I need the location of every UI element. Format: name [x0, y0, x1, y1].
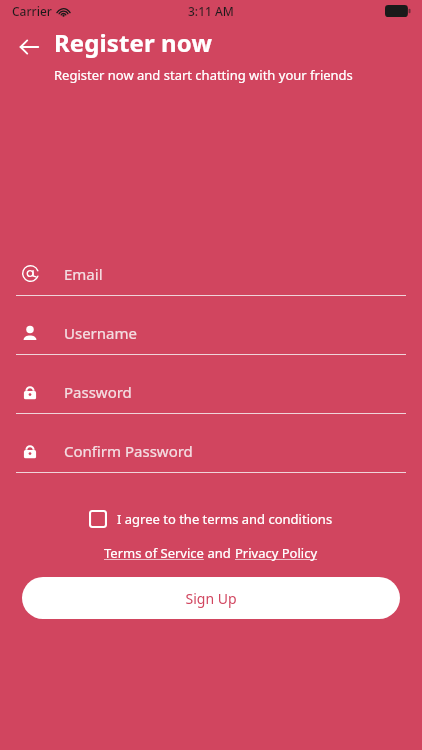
button[interactable]: Email [0, 252, 422, 311]
staticText: 3:11 AM [188, 3, 234, 19]
staticText: Register now and start chatting with you… [54, 66, 353, 84]
staticText: and [204, 544, 235, 562]
button[interactable]: Terms of Service [104, 542, 204, 564]
button[interactable]: Username [0, 311, 422, 370]
button[interactable]: Sign Up [22, 577, 400, 619]
staticText: Email [64, 264, 103, 284]
staticText: Password [64, 382, 132, 402]
staticText: Confirm Password [64, 441, 193, 461]
staticText: Register now [54, 26, 213, 59]
button[interactable]: Confirm Password [0, 429, 422, 488]
staticText: Sign Up [185, 589, 237, 608]
button[interactable]: I agree to the terms and conditions [85, 505, 337, 533]
staticText: Carrier [12, 3, 52, 19]
button[interactable]: Back [10, 28, 48, 66]
button[interactable]: Password [0, 370, 422, 429]
staticText: I agree to the terms and conditions [117, 510, 333, 528]
staticText: Username [64, 323, 137, 343]
button[interactable]: Privacy Policy [235, 542, 318, 564]
